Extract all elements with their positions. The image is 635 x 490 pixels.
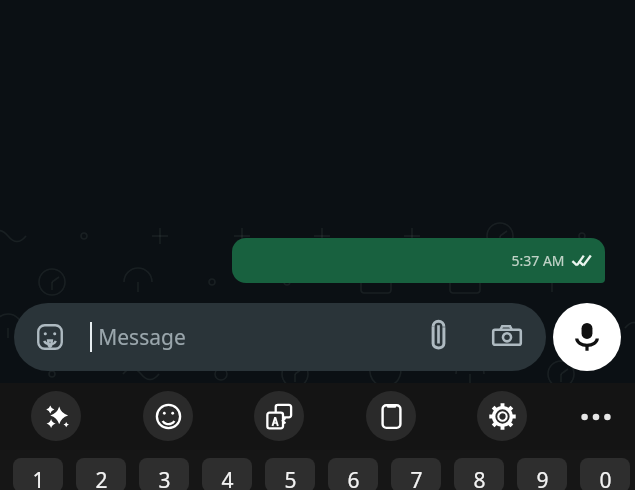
button[interactable]: 3 xyxy=(139,458,189,490)
button[interactable]: Stickers xyxy=(28,315,72,359)
staticText: 0 xyxy=(599,466,612,490)
button[interactable]: 6 xyxy=(328,458,378,490)
button[interactable]: 5:37 AM xyxy=(232,238,605,283)
button[interactable]: More options xyxy=(570,383,622,450)
button[interactable]: Emoji xyxy=(143,391,193,441)
staticText: 3 xyxy=(158,466,171,490)
button[interactable]: 8 xyxy=(454,458,504,490)
staticText: 7 xyxy=(410,466,423,490)
button[interactable]: 7 xyxy=(391,458,441,490)
button[interactable]: 0 xyxy=(580,458,630,490)
button[interactable]: Clipboard xyxy=(366,391,416,441)
staticText: 4 xyxy=(221,466,234,490)
button[interactable]: Voice message xyxy=(553,303,621,371)
staticText: 8 xyxy=(473,466,486,490)
button[interactable]: Stickers xyxy=(14,303,546,371)
button[interactable]: 9 xyxy=(517,458,567,490)
button[interactable]: Translate xyxy=(254,391,304,441)
staticText: 5:37 AM xyxy=(511,251,565,270)
button[interactable]: Settings xyxy=(477,391,527,441)
button[interactable]: Attach xyxy=(416,315,460,359)
staticText: 2 xyxy=(95,466,108,490)
staticText: Message xyxy=(98,323,186,352)
button[interactable]: 1 xyxy=(13,458,63,490)
button[interactable]: 2 xyxy=(76,458,126,490)
staticText: 6 xyxy=(347,466,360,490)
staticText: 1 xyxy=(32,466,45,490)
staticText: 5 xyxy=(284,466,297,490)
staticText: 9 xyxy=(536,466,549,490)
button[interactable]: 5 xyxy=(265,458,315,490)
button[interactable]: 4 xyxy=(202,458,252,490)
button[interactable]: Camera xyxy=(484,314,530,360)
button[interactable]: AI assistant xyxy=(31,391,81,441)
